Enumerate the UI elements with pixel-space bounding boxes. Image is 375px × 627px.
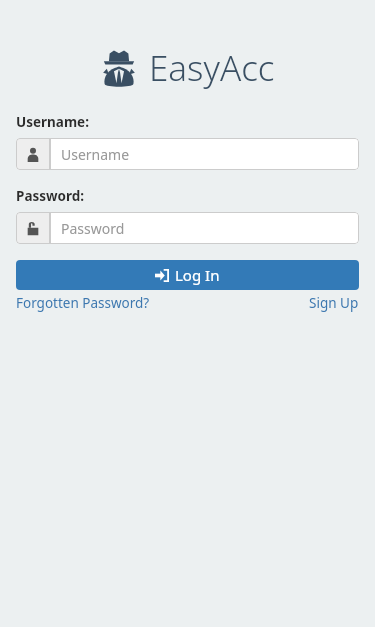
staticText: Password bbox=[61, 219, 125, 238]
staticText: Password: bbox=[16, 187, 85, 205]
button[interactable]: Username bbox=[16, 138, 359, 170]
staticText: Sign Up bbox=[309, 294, 359, 312]
staticText: Username: bbox=[16, 113, 89, 131]
staticText: EasyAcc bbox=[149, 44, 275, 92]
staticText: Log In bbox=[175, 265, 220, 285]
staticText: Username bbox=[61, 145, 130, 164]
staticText: Forgotten Password? bbox=[16, 294, 150, 312]
button[interactable]: Log In bbox=[16, 260, 359, 290]
button[interactable]: Sign Up bbox=[309, 294, 359, 312]
button[interactable]: Forgotten Password? bbox=[16, 294, 150, 312]
other: Password bbox=[16, 212, 50, 244]
button[interactable]: Password bbox=[16, 212, 359, 244]
other: Username bbox=[16, 138, 50, 170]
